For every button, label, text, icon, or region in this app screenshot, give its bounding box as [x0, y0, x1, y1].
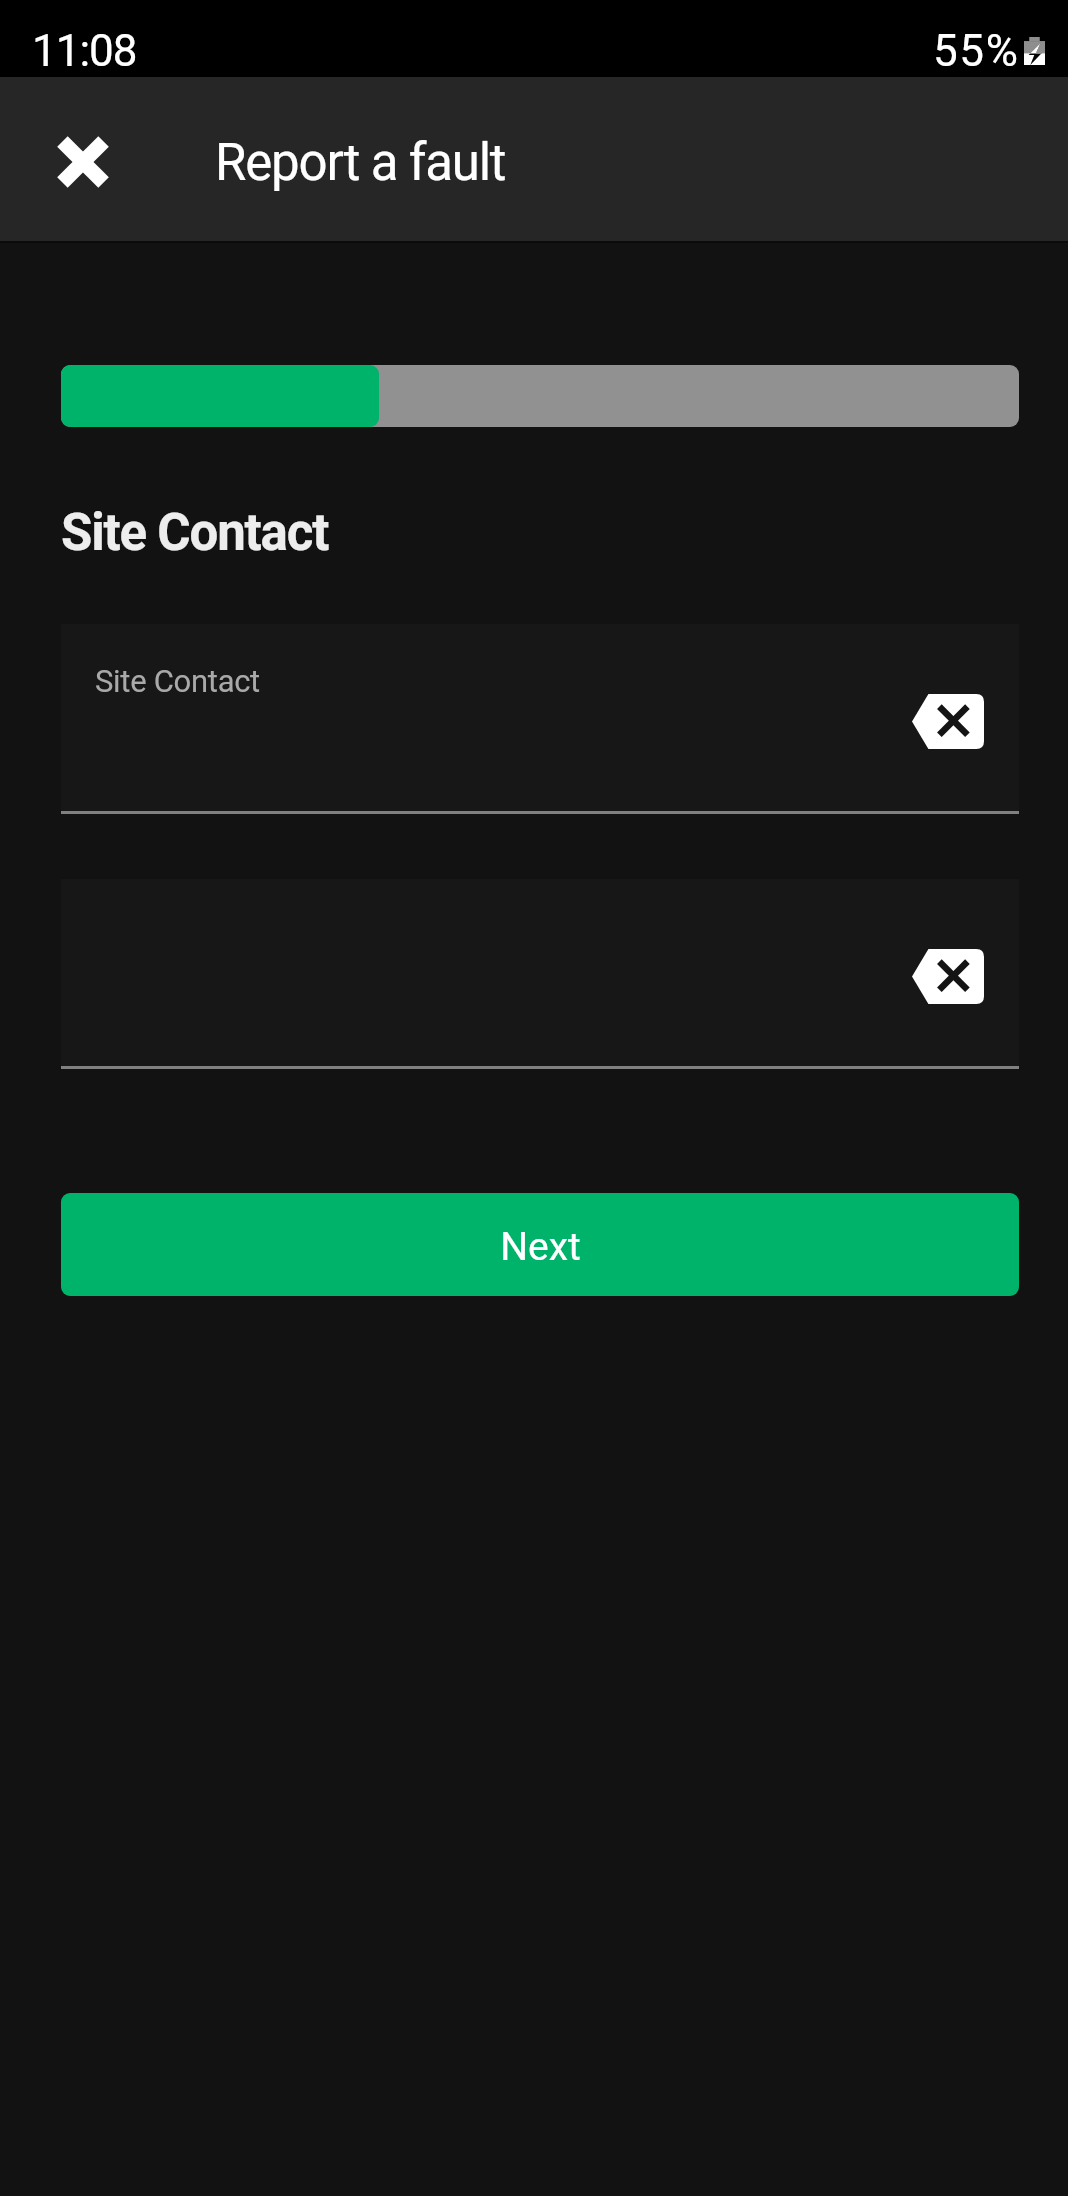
button[interactable]: Clear text	[912, 694, 984, 749]
button[interactable]: Close	[31, 110, 135, 214]
staticText: Next	[500, 1224, 581, 1270]
button[interactable]: Site Contact	[61, 624, 1019, 814]
staticText: Report a fault	[215, 133, 506, 193]
staticText: 11:08	[32, 25, 137, 77]
staticText: Site Contact	[61, 503, 329, 563]
button[interactable]: Clear text	[61, 879, 1019, 1069]
staticText: 55%	[933, 25, 1020, 77]
staticText: Site Contact	[95, 663, 260, 699]
button[interactable]: Clear text	[912, 949, 984, 1004]
button[interactable]: Next	[61, 1193, 1019, 1296]
